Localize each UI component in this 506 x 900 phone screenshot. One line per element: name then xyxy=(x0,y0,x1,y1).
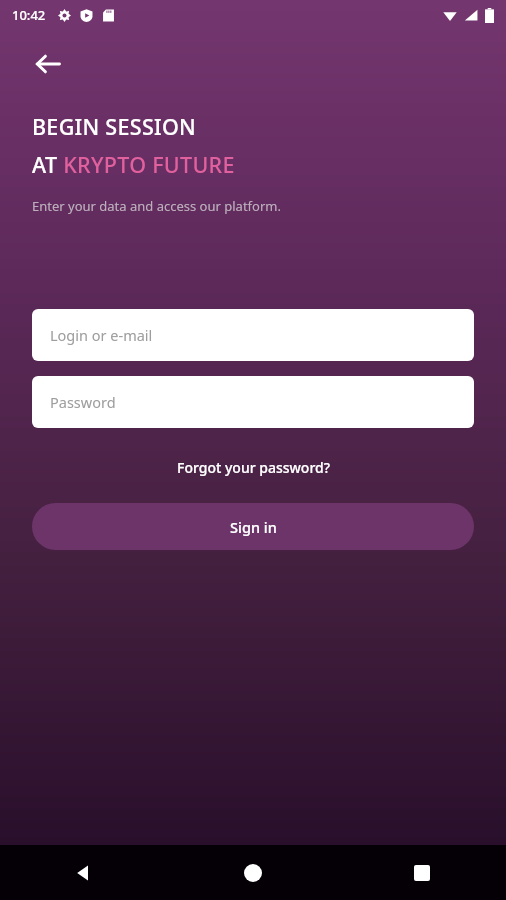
button[interactable]: Home xyxy=(168,845,337,900)
button[interactable]: Back xyxy=(0,845,168,900)
staticText: Sign in xyxy=(230,517,277,537)
button[interactable]: Recent apps xyxy=(337,845,506,900)
staticText: Password xyxy=(50,392,116,412)
staticText: Forgot your password? xyxy=(177,458,330,477)
button[interactable]: Forgot your password? xyxy=(171,454,336,481)
staticText: Enter your data and access our platform. xyxy=(32,197,281,215)
staticText: Login or e-mail xyxy=(50,325,153,345)
staticText: BEGIN SESSION xyxy=(32,112,197,141)
button[interactable]: Sign in xyxy=(32,503,474,550)
staticText: AT KRYPTO FUTURE xyxy=(32,150,235,179)
staticText: 10:42 xyxy=(12,6,46,24)
button[interactable]: Login or e-mail xyxy=(32,309,474,361)
button[interactable]: Password xyxy=(32,376,474,428)
button[interactable]: Back xyxy=(22,38,74,90)
